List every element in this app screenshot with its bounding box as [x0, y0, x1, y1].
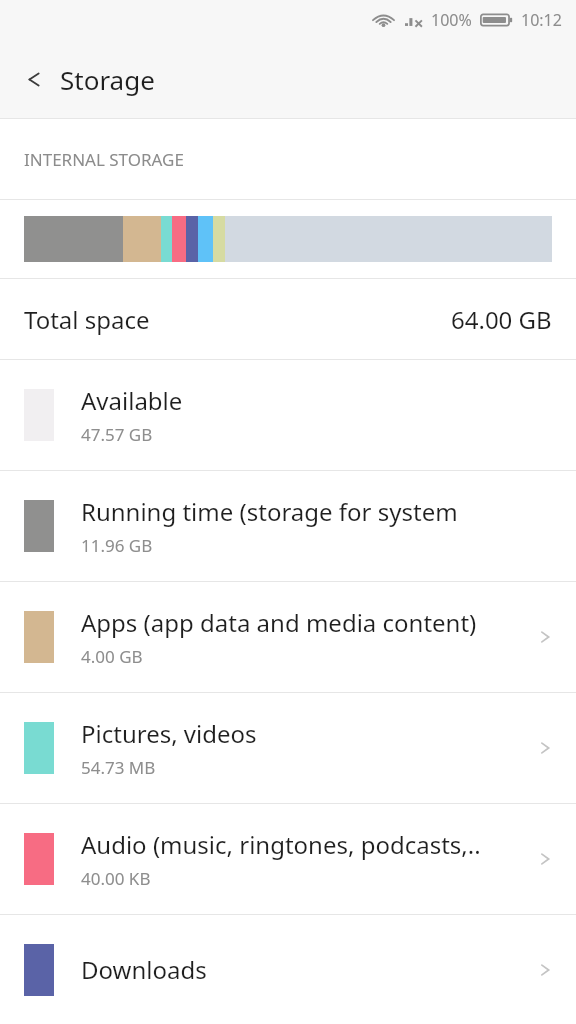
staticText: 54.73 MB: [81, 756, 156, 779]
staticText: 100%: [431, 9, 472, 31]
staticText: 47.57 GB: [81, 423, 153, 446]
staticText: INTERNAL STORAGE: [24, 148, 184, 171]
staticText: 40.00 KB: [81, 867, 151, 890]
other: Open Pictures, videos: [532, 735, 558, 761]
staticText: Total space: [24, 303, 150, 336]
staticText: 10:12: [521, 9, 562, 31]
staticText: Pictures, videos: [81, 717, 257, 750]
staticText: Storage: [60, 62, 155, 97]
staticText: 4.00 GB: [81, 645, 143, 668]
other: Open Apps (app data and media content): [532, 624, 558, 650]
other: Open Audio (music, ringtones, podcasts,.…: [532, 846, 558, 872]
staticText: Available: [81, 384, 183, 417]
staticText: Running time (storage for system runni..: [81, 495, 524, 528]
staticText: Downloads: [81, 953, 207, 986]
button[interactable]: Apps (app data and media content): [0, 582, 576, 692]
staticText: Audio (music, ringtones, podcasts,..: [81, 828, 481, 861]
staticText: Apps (app data and media content): [81, 606, 477, 639]
button[interactable]: Total space: [0, 279, 576, 359]
other: Open Downloads: [532, 957, 558, 983]
button[interactable]: Audio (music, ringtones, podcasts,..: [0, 804, 576, 914]
button[interactable]: Pictures, videos: [0, 693, 576, 803]
staticText: 64.00 GB: [451, 303, 552, 336]
button[interactable]: Running time (storage for system runni..: [0, 471, 576, 581]
staticText: 11.96 GB: [81, 534, 153, 557]
other: Back: [23, 68, 46, 91]
button[interactable]: Available: [0, 360, 576, 470]
button[interactable]: Downloads: [0, 915, 576, 1024]
button[interactable]: Back: [0, 40, 576, 118]
